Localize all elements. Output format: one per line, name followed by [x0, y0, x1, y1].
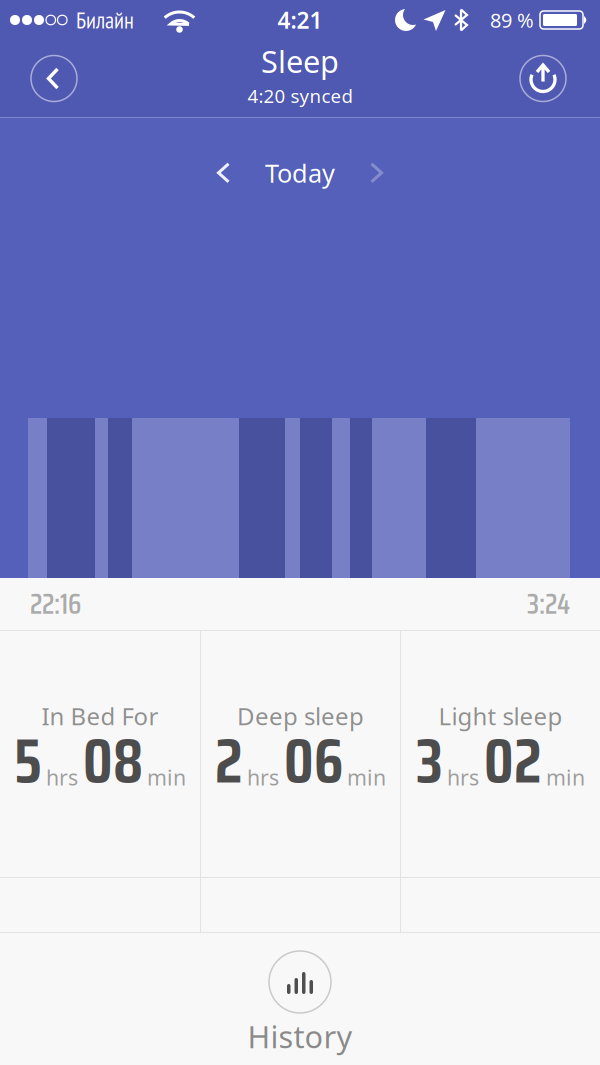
staticText: 89 % [490, 7, 534, 33]
staticText: 4:20 synced [247, 83, 352, 108]
staticText: 5 [14, 713, 42, 809]
staticText: History [247, 1016, 352, 1057]
button[interactable]: History [247, 951, 352, 1057]
staticText: 02 [484, 713, 542, 809]
staticText: min [546, 763, 585, 791]
staticText: hrs [46, 763, 78, 791]
staticText: min [347, 763, 386, 791]
staticText: In Bed For [41, 700, 158, 732]
staticText: 2 [215, 713, 243, 809]
button[interactable] [520, 55, 566, 101]
staticText: Билайн [76, 5, 134, 35]
staticText: 06 [284, 713, 343, 809]
staticText: Sleep [261, 41, 339, 81]
staticText: hrs [447, 763, 479, 791]
staticText: 3:24 [527, 582, 570, 626]
staticText: 22:16 [30, 582, 81, 626]
staticText: 4:21 [277, 5, 322, 35]
staticText: 3 [416, 713, 443, 809]
button[interactable]: Today [216, 156, 384, 190]
staticText: 08 [83, 713, 143, 809]
staticText: hrs [247, 763, 279, 791]
staticText: Today [265, 156, 335, 190]
button[interactable] [31, 55, 77, 101]
staticText: Light sleep [438, 700, 562, 732]
staticText: Deep sleep [237, 700, 364, 732]
staticText: min [147, 763, 186, 791]
